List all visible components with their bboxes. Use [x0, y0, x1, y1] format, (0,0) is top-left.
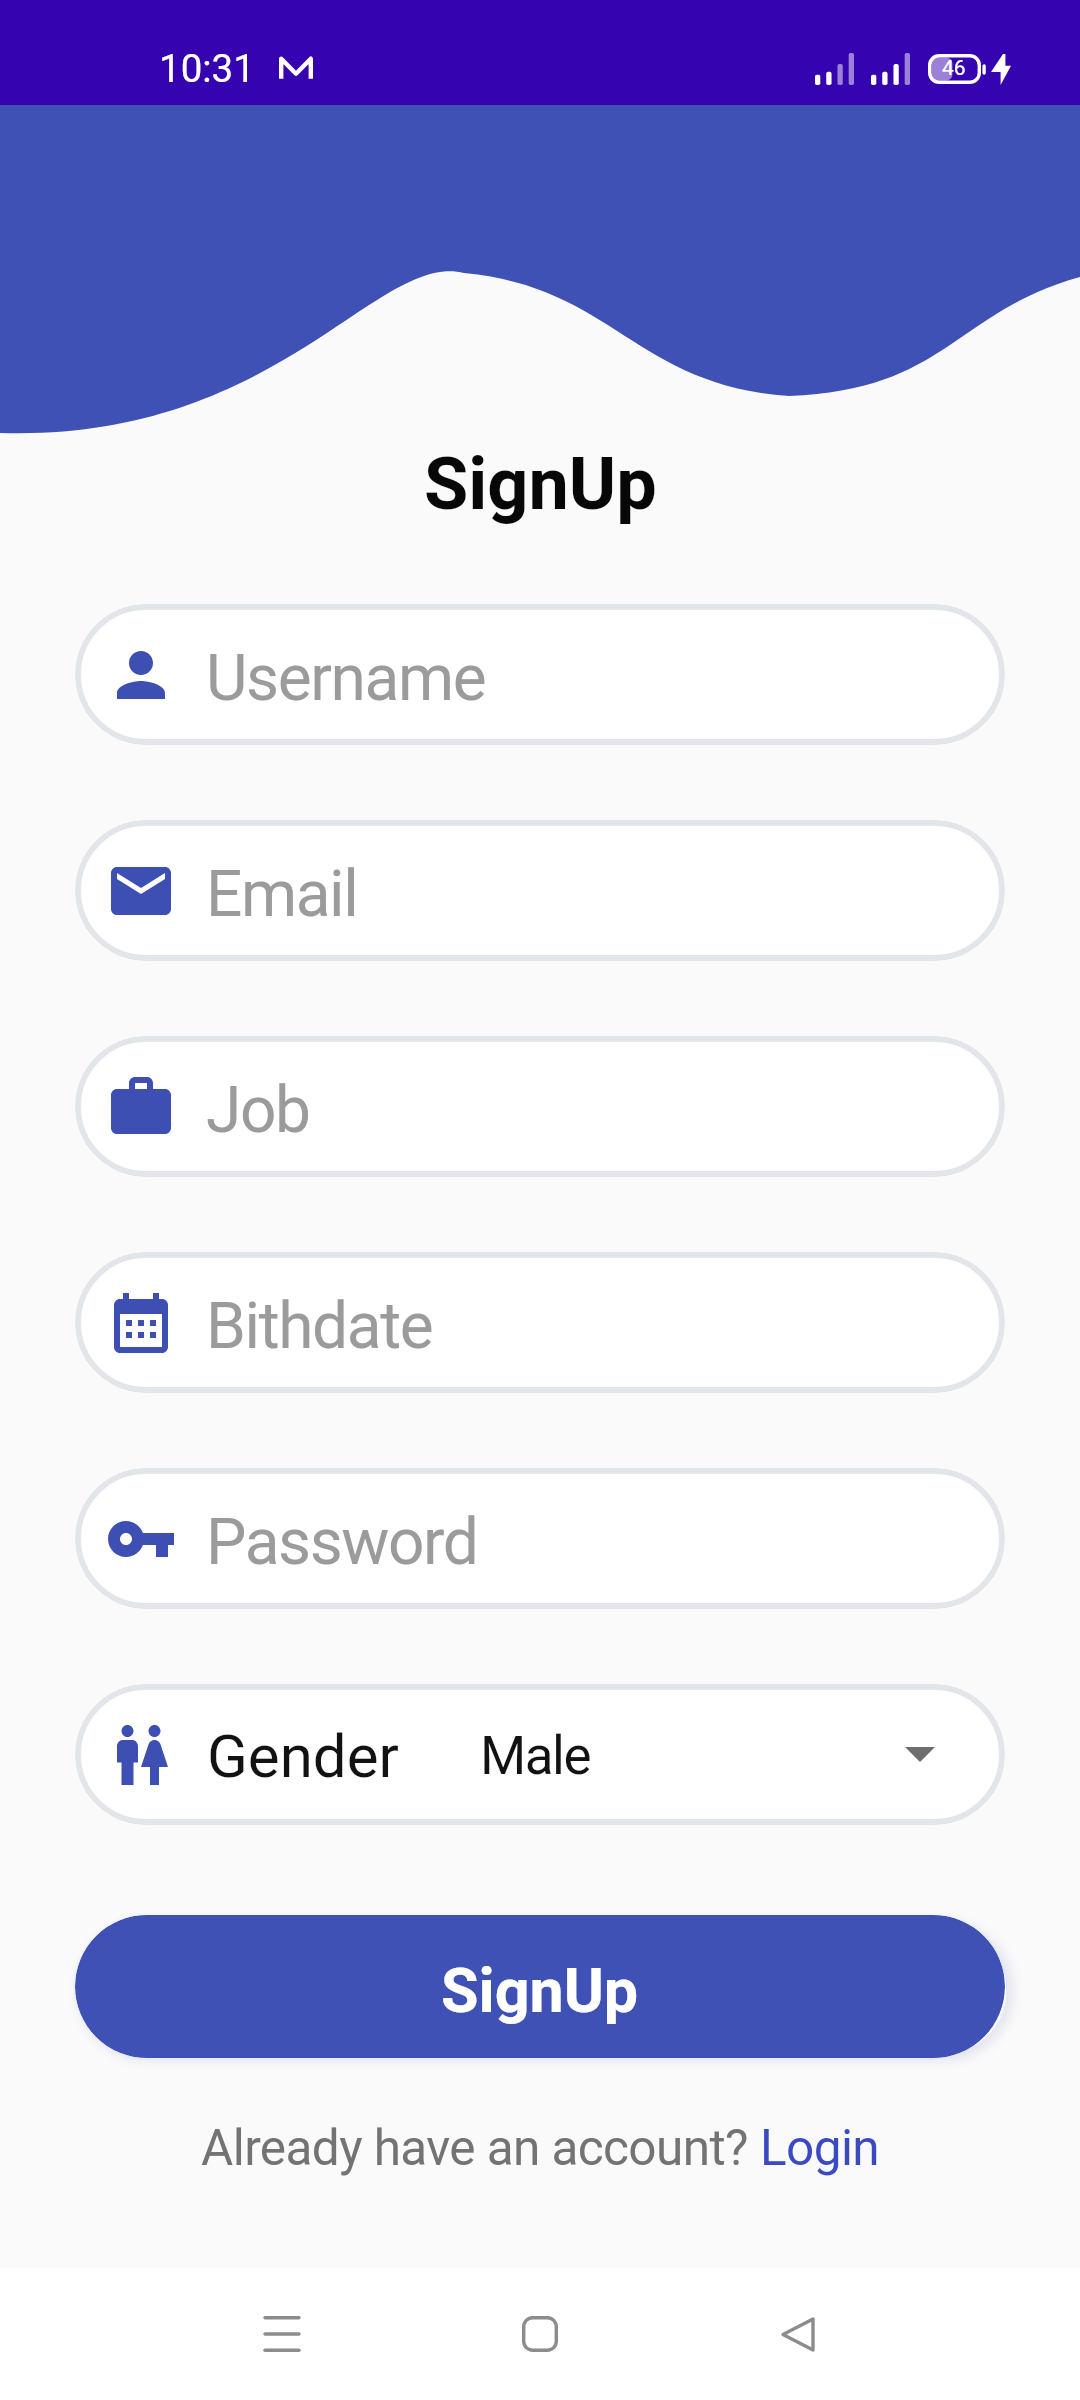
- button[interactable]: Job: [75, 1036, 1005, 1177]
- staticText: Already have an account?: [201, 2119, 760, 2177]
- staticText: Username: [206, 641, 486, 716]
- staticText: Password: [206, 1505, 478, 1580]
- staticText: 46: [942, 56, 966, 81]
- button[interactable]: Bithdate: [75, 1252, 1005, 1393]
- button[interactable]: Back: [738, 2290, 858, 2378]
- button[interactable]: SignUp: [75, 1915, 1005, 2058]
- staticText: Email: [206, 857, 358, 932]
- button[interactable]: Email: [75, 820, 1005, 961]
- staticText: 10:31: [159, 46, 255, 91]
- staticText: Job: [206, 1073, 310, 1148]
- button[interactable]: Login: [760, 2119, 880, 2177]
- button[interactable]: Username: [75, 604, 1005, 745]
- staticText: Login: [760, 2119, 880, 2177]
- button[interactable]: Password: [75, 1468, 1005, 1609]
- staticText: Gender: [207, 1721, 399, 1791]
- button[interactable]: Home: [480, 2290, 600, 2378]
- staticText: Bithdate: [206, 1289, 433, 1364]
- button[interactable]: Recent apps: [222, 2290, 342, 2378]
- staticText: SignUp: [441, 1955, 639, 2026]
- staticText: Male: [480, 1725, 591, 1787]
- button[interactable]: Gender: [75, 1684, 1005, 1825]
- staticText: SignUp: [424, 442, 657, 526]
